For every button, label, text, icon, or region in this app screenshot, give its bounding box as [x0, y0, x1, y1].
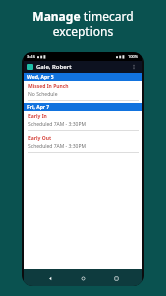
button[interactable]: Early Out [24, 133, 142, 155]
staticText: Gale, Robert [36, 63, 72, 71]
button[interactable]: Fri, Apr 7 [24, 103, 142, 111]
button[interactable]: Early In [24, 111, 142, 133]
staticText: No Schedule [28, 91, 58, 98]
staticText: Scheduled 7AM - 3:30PM [28, 143, 86, 150]
button[interactable]: Missed In Punch [24, 81, 142, 103]
staticText: Wed, Apr 5 [27, 74, 54, 81]
button[interactable]: More options [129, 62, 139, 72]
button[interactable]: App icon [27, 64, 33, 70]
button[interactable]: Wed, Apr 5 [24, 73, 142, 81]
button[interactable]: Home [76, 271, 90, 285]
staticText: 100% [128, 54, 139, 59]
button[interactable]: Recents [109, 271, 123, 285]
staticText: Early Out [28, 135, 52, 142]
staticText: Early In [28, 113, 47, 120]
staticText: Manage timecard exceptions [32, 8, 134, 39]
button[interactable]: Back [43, 271, 57, 285]
staticText: 3:46 [27, 54, 35, 59]
staticText: Missed In Punch [28, 83, 69, 90]
staticText: Fri, Apr 7 [27, 104, 50, 111]
staticText: Scheduled 7AM - 3:30PM [28, 121, 86, 128]
